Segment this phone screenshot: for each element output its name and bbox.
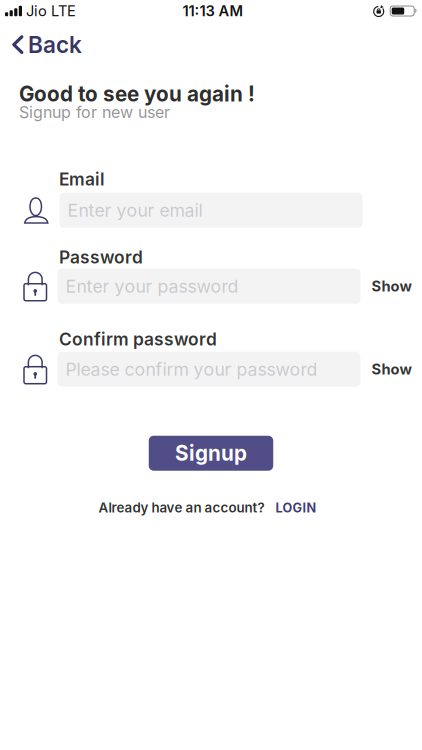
staticText: Email xyxy=(59,169,105,190)
staticText: Confirm password xyxy=(59,329,217,350)
staticText: Show xyxy=(371,360,411,378)
staticText: 11:13 AM xyxy=(183,2,244,20)
staticText: Show xyxy=(371,277,411,295)
staticText: Signup for new user xyxy=(19,102,170,122)
staticText: Enter your email xyxy=(67,200,202,221)
staticText: Back xyxy=(28,31,82,58)
button[interactable]: Signup xyxy=(149,436,273,471)
staticText: Already have an account? xyxy=(98,500,264,516)
button[interactable]: LOGIN xyxy=(275,500,316,515)
staticText: Signup xyxy=(175,441,247,466)
staticText: LTE xyxy=(51,2,76,20)
button[interactable]: Show xyxy=(360,277,411,295)
staticText: Enter your password xyxy=(65,275,238,297)
button[interactable]: Back xyxy=(0,31,82,58)
staticText: Good to see you again ! xyxy=(19,81,255,106)
staticText: Please confirm your password xyxy=(65,358,317,380)
staticText: Jio xyxy=(26,2,47,20)
button[interactable]: Show xyxy=(360,360,411,378)
staticText: LOGIN xyxy=(275,500,316,515)
staticText: Password xyxy=(59,247,143,268)
